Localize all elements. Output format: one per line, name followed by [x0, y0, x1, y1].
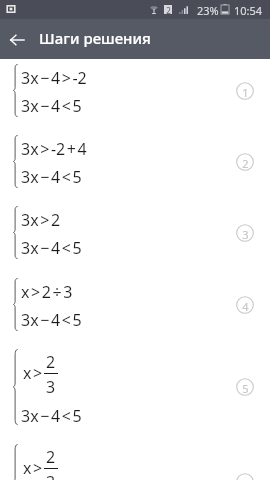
staticText: 3x − 4 > -2 — [21, 67, 87, 89]
staticText: Шаги решения — [39, 28, 151, 48]
staticText: 1 — [242, 85, 249, 100]
staticText: 2 — [46, 446, 56, 468]
staticText: 3x − 4 < 5 — [21, 166, 82, 188]
staticText: 5 — [242, 381, 249, 396]
button[interactable]: 6 — [236, 473, 254, 480]
staticText: 2 — [46, 351, 56, 373]
button[interactable]: 3x > 2 — [0, 206, 270, 259]
button[interactable]: 1 — [236, 82, 254, 100]
staticText: 3x > -2 + 4 — [21, 138, 87, 160]
staticText: 3 — [46, 376, 56, 398]
staticText: 3x − 4 < 5 — [21, 309, 82, 331]
button[interactable]: 4 — [236, 296, 254, 314]
staticText: x > — [23, 457, 43, 479]
button[interactable]: x > — [0, 444, 270, 480]
button[interactable]: 3 — [236, 224, 254, 242]
staticText: 3x − 4 < 5 — [21, 405, 82, 427]
staticText: 2 — [242, 156, 249, 171]
staticText: 23% — [197, 3, 219, 18]
staticText: 3x − 4 < 5 — [21, 237, 82, 259]
staticText: x > — [23, 362, 43, 384]
button[interactable]: 5 — [236, 378, 254, 396]
staticText: 3x − 4 < 5 — [21, 95, 82, 117]
staticText: 2 — [166, 5, 171, 14]
staticText: 10:54 — [234, 3, 263, 18]
staticText: 3x > 2 — [21, 209, 61, 231]
staticText: x > 2 ÷ 3 — [21, 281, 73, 303]
staticText: 3 — [242, 227, 249, 242]
staticText: 3 — [46, 471, 56, 480]
button[interactable]: 3x > -2 + 4 — [0, 135, 270, 188]
staticText: 4 — [242, 299, 249, 314]
button[interactable]: x > — [0, 349, 270, 425]
button[interactable]: Back — [0, 19, 34, 59]
button[interactable]: x > 2 ÷ 3 — [0, 278, 270, 331]
button[interactable]: 3x − 4 > -2 — [0, 64, 270, 117]
button[interactable]: 2 — [236, 153, 254, 171]
